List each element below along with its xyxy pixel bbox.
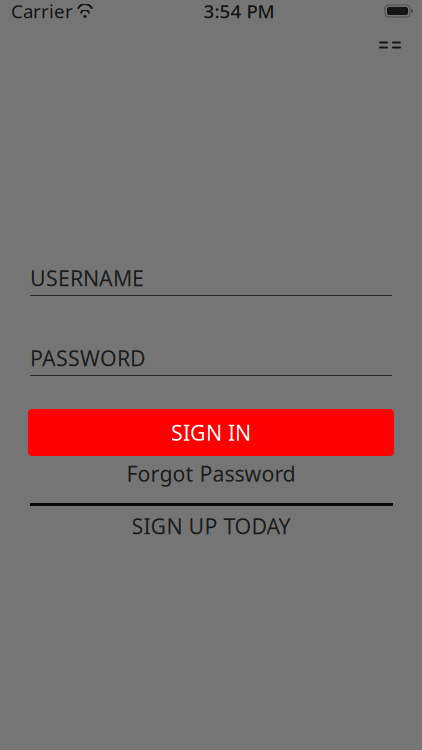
button[interactable]: SIGN IN [28, 409, 394, 456]
button[interactable]: SIGN UP TODAY [28, 506, 394, 546]
staticText: USERNAME [30, 264, 144, 292]
staticText: 3:54 PM [203, 0, 274, 23]
button[interactable]: Close [368, 23, 412, 67]
button[interactable]: Forgot Password [28, 456, 394, 491]
staticText: SIGN IN [171, 418, 251, 447]
staticText: PASSWORD [30, 344, 146, 372]
staticText: Forgot Password [126, 459, 295, 488]
staticText: Carrier [11, 0, 73, 23]
staticText: SIGN UP TODAY [131, 512, 290, 540]
